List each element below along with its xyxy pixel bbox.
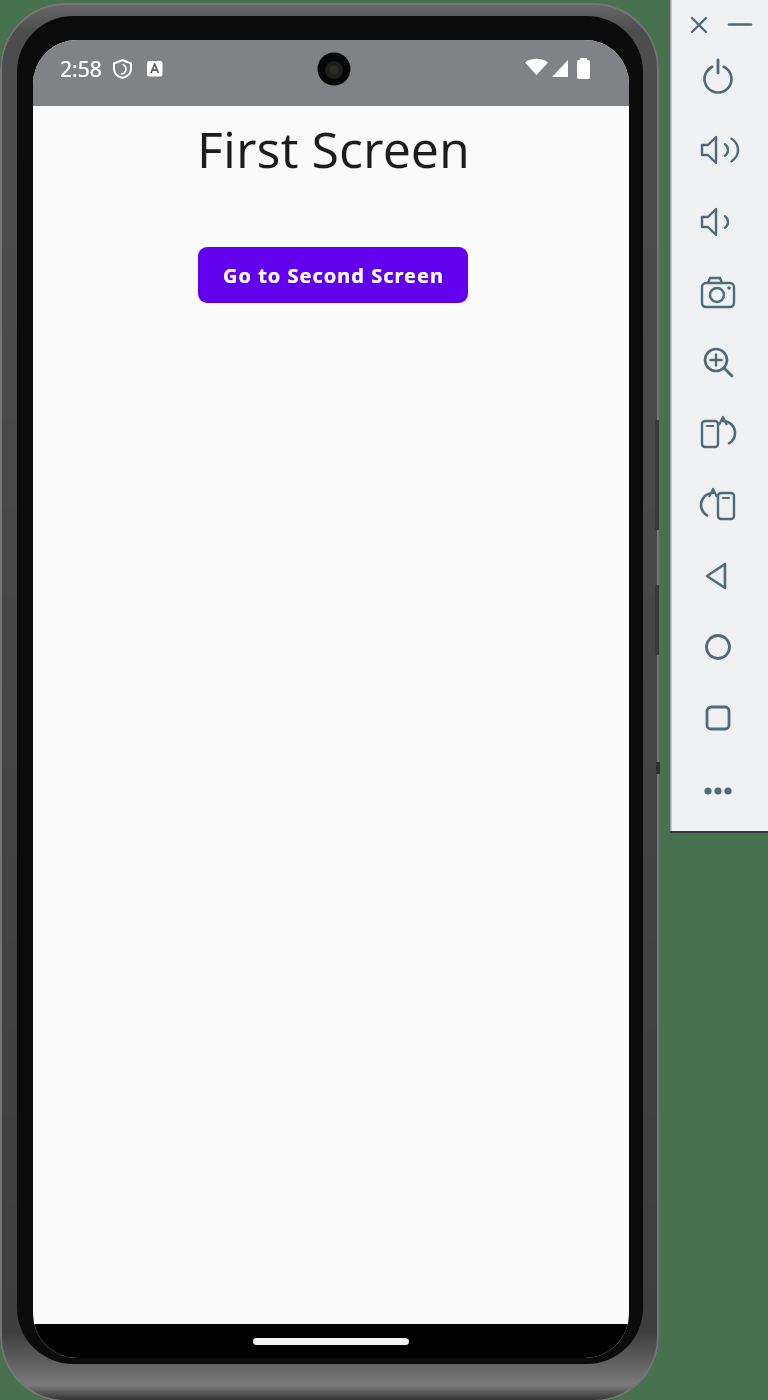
button[interactable] [698,771,738,811]
staticText: First Screen [197,115,470,183]
button[interactable] [698,130,738,170]
button[interactable] [698,413,738,453]
button[interactable] [698,343,738,383]
button[interactable] [686,12,712,38]
button[interactable] [698,556,738,596]
button[interactable] [698,485,738,525]
button[interactable]: Go to Second Screen [198,247,468,303]
staticText: 2:58 [60,55,102,84]
button[interactable] [698,698,738,738]
button[interactable] [698,273,738,313]
button[interactable] [698,627,738,667]
button[interactable] [727,12,753,38]
button[interactable] [698,58,738,98]
button[interactable] [698,202,738,242]
staticText: Go to Second Screen [223,262,444,289]
